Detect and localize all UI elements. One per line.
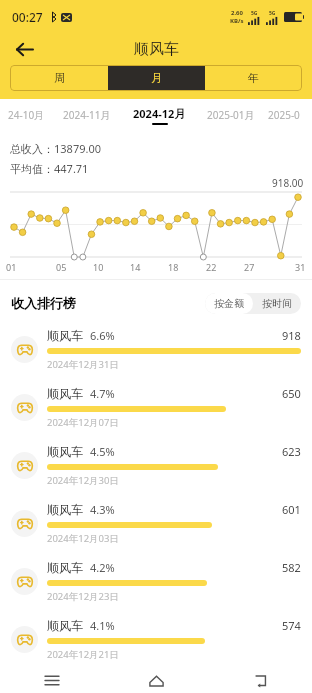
staticText: 2024年12月21日	[47, 648, 119, 661]
staticText: 2024-11月	[63, 108, 111, 122]
staticText: 2.60	[231, 9, 243, 17]
staticText: 按金额	[214, 297, 244, 310]
staticText: 顺风车	[134, 40, 179, 59]
staticText: 918.00	[272, 176, 304, 190]
staticText: 总收入：13879.00	[10, 141, 101, 156]
staticText: 4.7%	[90, 386, 115, 401]
staticText: 582	[282, 560, 301, 575]
staticText: 4.3%	[90, 502, 115, 517]
staticText: 10	[93, 261, 104, 273]
button[interactable]: 周	[10, 65, 108, 91]
button[interactable]: 2025-01月	[196, 108, 266, 122]
button[interactable]: 顺风车	[0, 378, 312, 436]
staticText: 18	[168, 261, 179, 273]
staticText: 05	[56, 261, 67, 273]
staticText: 2025-0	[268, 108, 300, 122]
staticText: 顺风车	[47, 444, 83, 459]
staticText: 01	[6, 261, 17, 273]
staticText: 24-10月	[8, 108, 45, 122]
button[interactable]: 月	[108, 65, 205, 91]
staticText: 6.6%	[90, 328, 115, 343]
staticText: 平均值：447.71	[10, 161, 89, 176]
staticText: 顺风车	[47, 560, 83, 575]
staticText: 2024年12月07日	[47, 416, 119, 429]
staticText: 5G	[269, 10, 276, 17]
staticText: 2025-01月	[207, 108, 255, 122]
staticText: 623	[282, 444, 301, 459]
staticText: 2024-12月	[133, 106, 186, 121]
staticText: 2024年12月31日	[47, 358, 119, 371]
staticText: 2024年12月23日	[47, 590, 119, 603]
staticText: 650	[282, 386, 301, 401]
staticText: 31	[295, 261, 306, 273]
staticText: 年	[248, 71, 259, 85]
button[interactable]: 顺风车	[0, 436, 312, 494]
button[interactable]: Back	[8, 33, 40, 65]
staticText: KB/s	[230, 17, 244, 25]
staticText: 00:27	[12, 9, 43, 25]
button[interactable]: 顺风车	[0, 610, 312, 668]
staticText: 4.2%	[90, 560, 115, 575]
staticText: 2024年12月03日	[47, 532, 119, 545]
button[interactable]: Recents	[0, 668, 104, 693]
staticText: 918	[282, 328, 301, 343]
staticText: 2024年12月30日	[47, 474, 119, 487]
staticText: 周	[54, 71, 65, 85]
staticText: 27	[244, 261, 255, 273]
staticText: 顺风车	[47, 618, 83, 633]
staticText: 顺风车	[47, 386, 83, 401]
button[interactable]: 按金额	[214, 293, 244, 314]
button[interactable]: 年	[205, 65, 302, 91]
staticText: 14	[130, 261, 141, 273]
button[interactable]: Back	[208, 668, 312, 693]
staticText: 顺风车	[47, 502, 83, 517]
staticText: 收入排行榜	[11, 295, 76, 311]
staticText: 601	[282, 502, 301, 517]
staticText: 22	[206, 261, 217, 273]
button[interactable]: 2024-11月	[52, 108, 122, 122]
button[interactable]: 顺风车	[0, 320, 312, 378]
button[interactable]: Home	[104, 668, 208, 693]
staticText: 按时间	[262, 297, 292, 310]
button[interactable]: 按时间	[262, 293, 292, 314]
staticText: 4.5%	[90, 444, 115, 459]
staticText: 574	[282, 618, 301, 633]
staticText: 顺风车	[47, 328, 83, 343]
button[interactable]: 顺风车	[0, 552, 312, 610]
button[interactable]: 顺风车	[0, 494, 312, 552]
staticText: 4.1%	[90, 618, 115, 633]
staticText: 月	[151, 71, 162, 85]
button[interactable]: 2024-12月	[122, 106, 196, 125]
staticText: 5G	[251, 10, 258, 17]
